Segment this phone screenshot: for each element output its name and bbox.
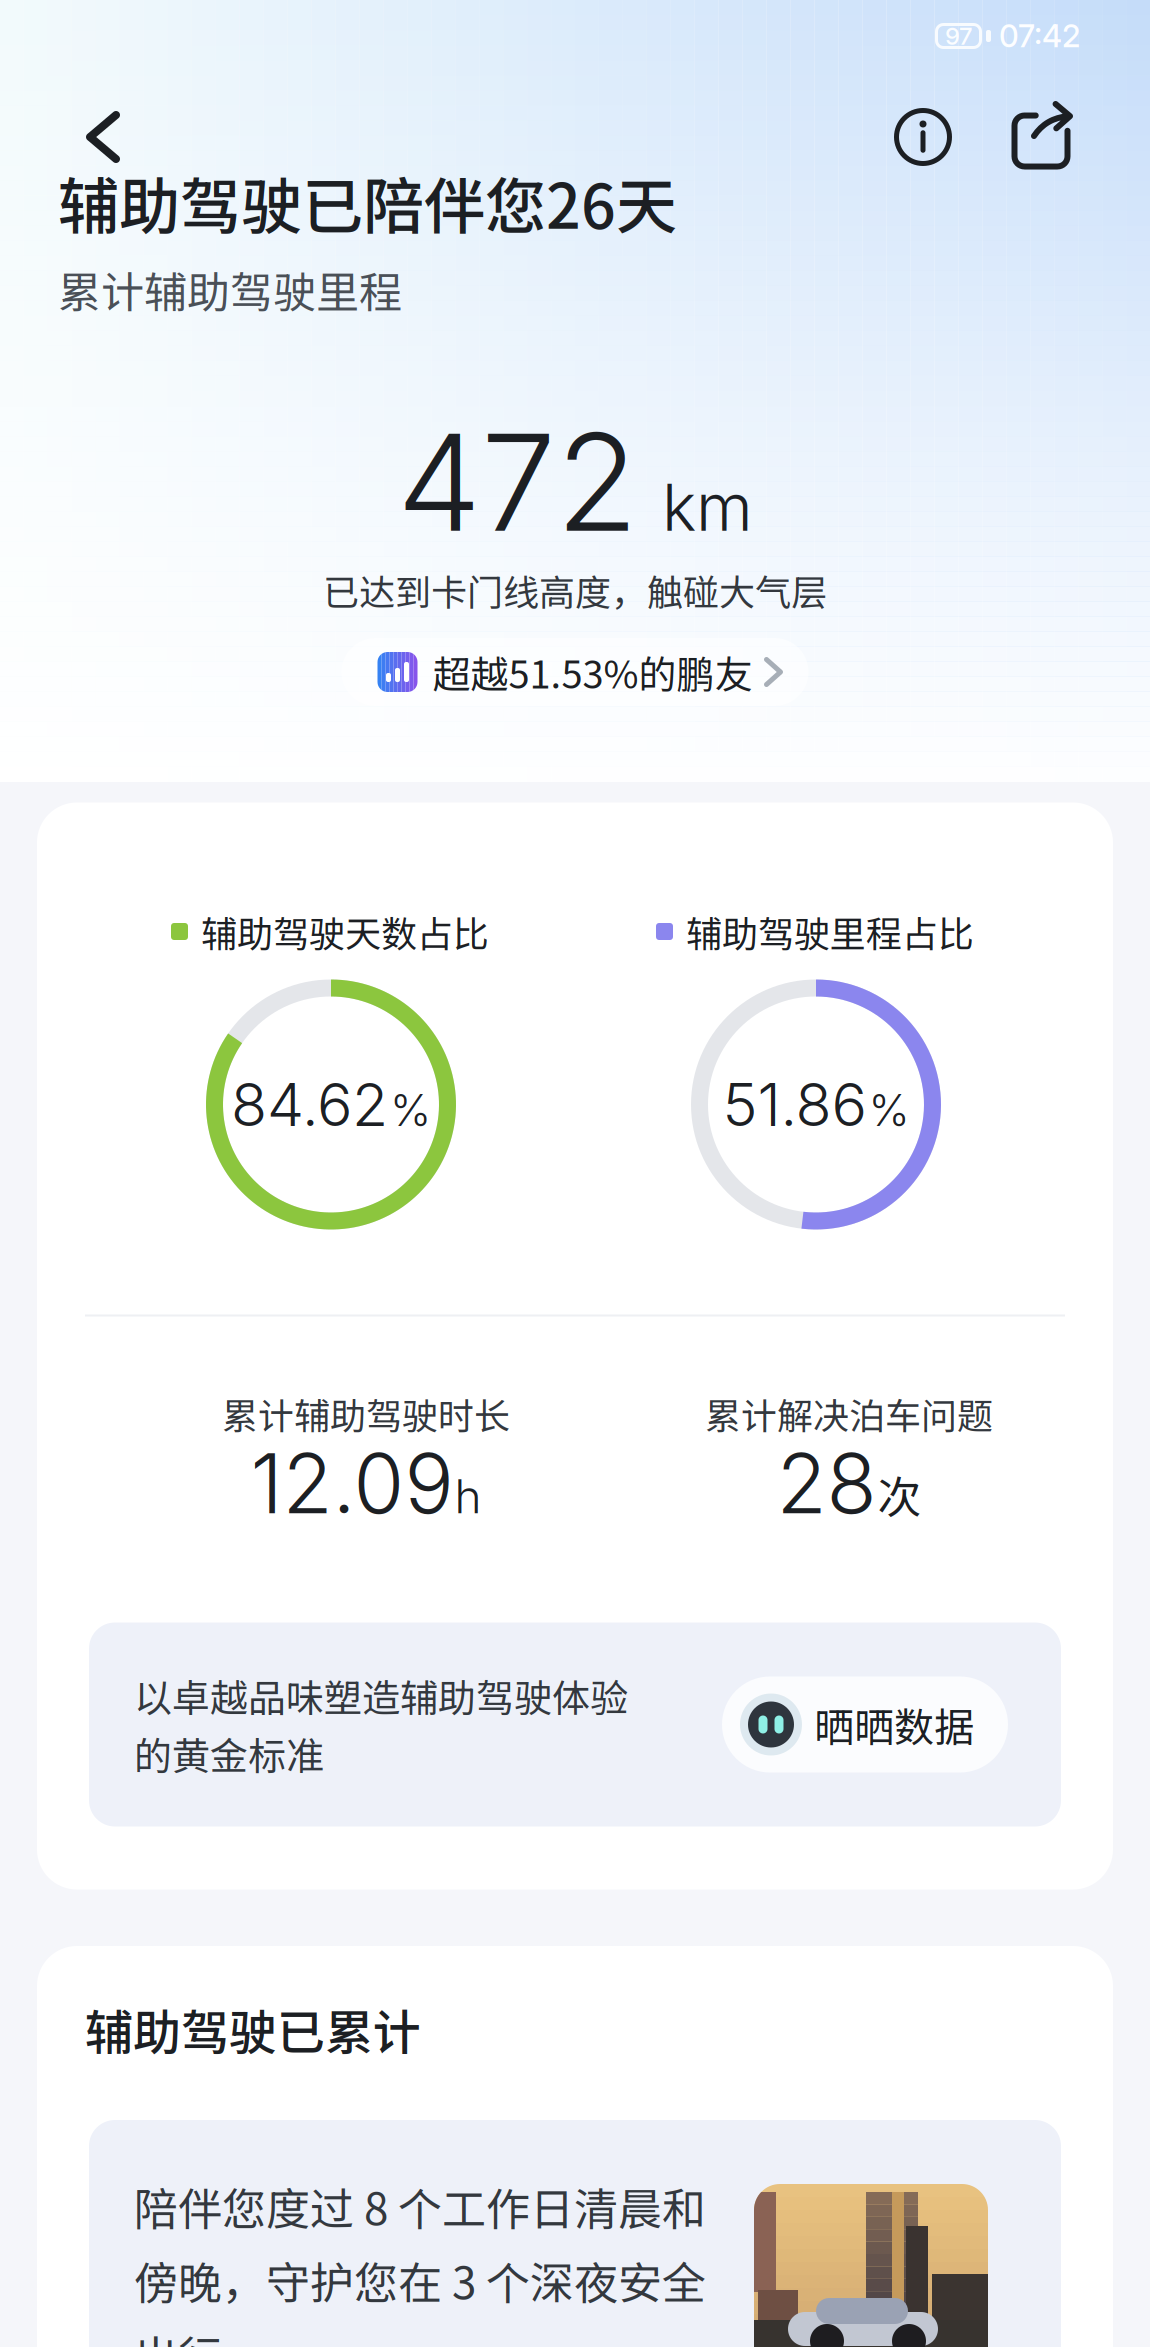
button[interactable]: 超越51.53%的鹏友 — [341, 638, 808, 706]
button[interactable]: Back — [65, 98, 141, 176]
staticText: 累计辅助驾驶里程 — [58, 258, 402, 321]
staticText: 次 — [877, 1462, 921, 1526]
button[interactable]: Share — [1002, 98, 1080, 176]
button[interactable]: 晒晒数据 — [722, 1676, 1008, 1772]
staticText: 以卓越品味塑造辅助驾驶体验 — [134, 1668, 628, 1723]
staticText: 累计解决泊车问题 — [705, 1387, 993, 1439]
staticText: 晒晒数据 — [814, 1695, 974, 1753]
staticText: h — [454, 1469, 481, 1524]
staticText: 陪伴您度过 8 个工作日清晨和 — [134, 2174, 706, 2238]
staticText: 97 — [945, 21, 972, 50]
staticText: 51.86 — [722, 1069, 866, 1140]
staticText: 辅助驾驶里程占比 — [686, 905, 974, 957]
staticText: 的黄金标准 — [134, 1726, 324, 1781]
staticText: 84.62 — [231, 1069, 388, 1140]
staticText: 辅助驾驶已累计 — [85, 1994, 421, 2064]
staticText: 07:42 — [999, 17, 1080, 55]
staticText: 超越51.53%的鹏友 — [432, 644, 752, 699]
staticText: 傍晚，守护您在 3 个深夜安全 — [134, 2248, 706, 2312]
staticText: 累计辅助驾驶时长 — [222, 1387, 510, 1439]
staticText: 472 — [397, 401, 638, 563]
staticText: 28 — [776, 1434, 876, 1533]
staticText: 12.09 — [250, 1434, 453, 1533]
staticText: km — [662, 468, 753, 546]
staticText: 辅助驾驶已陪伴您26天 — [58, 158, 677, 246]
staticText: 辅助驾驶天数占比 — [201, 905, 489, 957]
staticText: 出行 — [134, 2322, 222, 2347]
staticText: % — [868, 1083, 909, 1136]
staticText: 已达到卡门线高度，触碰大气层 — [323, 564, 827, 616]
staticText: % — [390, 1083, 431, 1136]
button[interactable]: Info — [884, 98, 962, 176]
